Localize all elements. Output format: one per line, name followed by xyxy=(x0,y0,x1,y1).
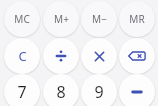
button[interactable]: MR xyxy=(119,1,155,37)
staticText: 7 xyxy=(17,81,27,103)
button[interactable]: 8 xyxy=(43,74,79,106)
staticText: 9 xyxy=(94,81,104,103)
button[interactable]: MC xyxy=(4,1,40,37)
button[interactable]: Divide xyxy=(43,38,79,74)
button[interactable]: Multiply xyxy=(81,38,117,74)
button[interactable]: Minus xyxy=(119,74,155,106)
button[interactable]: M+ xyxy=(43,1,79,37)
button[interactable]: C xyxy=(4,38,40,74)
button[interactable]: 7 xyxy=(4,74,40,106)
staticText: MC xyxy=(14,12,30,26)
button[interactable]: Backspace xyxy=(119,38,155,74)
staticText: 8 xyxy=(56,81,66,103)
staticText: MR xyxy=(129,12,145,26)
staticText: C xyxy=(18,47,27,65)
button[interactable]: M− xyxy=(81,1,117,37)
staticText: M+ xyxy=(54,12,69,26)
button[interactable]: 9 xyxy=(81,74,117,106)
staticText: M− xyxy=(92,12,107,26)
